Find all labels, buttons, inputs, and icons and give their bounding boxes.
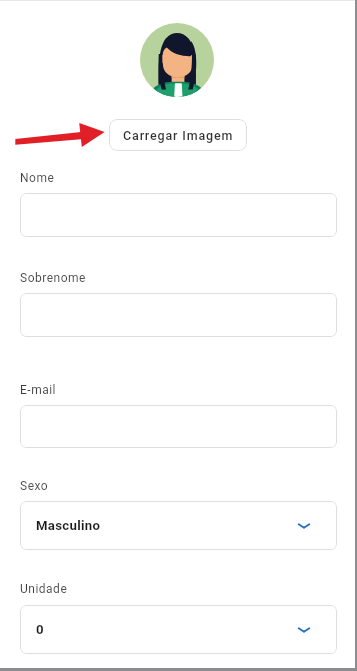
button[interactable]: Masculino (20, 501, 337, 550)
staticText: Carregar Imagem (123, 128, 234, 143)
staticText: E-mail (20, 383, 57, 397)
staticText: 0 (36, 622, 44, 637)
button[interactable]: Carregar Imagem (109, 119, 247, 151)
button[interactable] (20, 293, 337, 337)
staticText: Nome (20, 171, 55, 185)
staticText: Masculino (36, 518, 101, 533)
staticText: Sobrenome (20, 271, 86, 285)
button[interactable] (20, 193, 337, 237)
button[interactable] (20, 405, 337, 448)
other: Foto do perfil (140, 23, 214, 97)
other: Abrir lista (298, 624, 310, 636)
button[interactable]: 0 (20, 605, 337, 654)
other: Seta indicativa (13, 119, 105, 151)
staticText: Sexo (20, 479, 49, 493)
other: Abrir lista (298, 520, 310, 532)
staticText: Unidade (20, 582, 68, 596)
